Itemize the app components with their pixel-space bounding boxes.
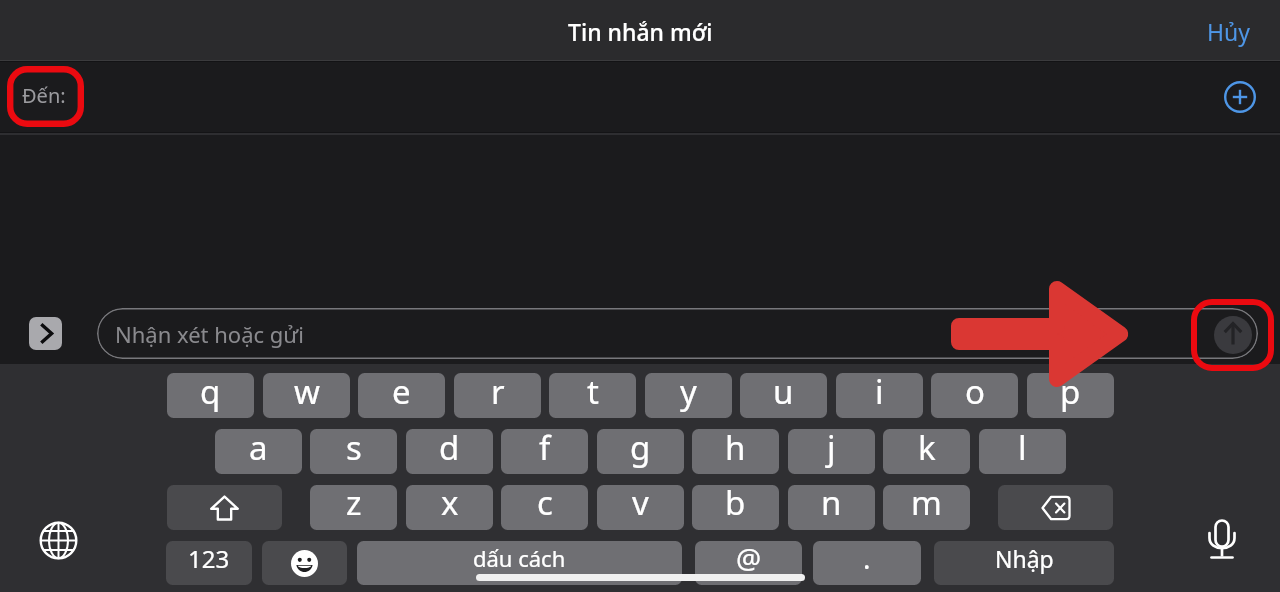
button[interactable]: Dictate [1200, 518, 1244, 564]
button[interactable]: z [310, 485, 397, 530]
button[interactable]: 123 [166, 541, 252, 585]
staticText: Nhận xét hoặc gửi [115, 319, 304, 349]
button[interactable]: f [501, 429, 588, 474]
button[interactable]: r [454, 373, 541, 418]
button[interactable]: o [931, 373, 1018, 418]
button[interactable]: Nhập [934, 541, 1114, 585]
staticText: y [680, 373, 697, 414]
button[interactable]: g [597, 429, 684, 474]
button[interactable]: h [692, 429, 779, 474]
button[interactable]: Nhận xét hoặc gửi [97, 308, 1258, 359]
button[interactable]: x [406, 485, 493, 530]
button[interactable]: . [813, 541, 921, 585]
button[interactable]: w [263, 373, 350, 418]
staticText: c [537, 485, 553, 525]
staticText: d [439, 429, 460, 470]
staticText: a [249, 429, 268, 470]
button[interactable]: v [597, 485, 684, 530]
button[interactable]: Show toolbar [29, 317, 62, 350]
staticText: . [863, 541, 871, 577]
staticText: k [918, 429, 936, 470]
button[interactable]: b [692, 485, 779, 530]
button[interactable]: Backspace [998, 485, 1113, 530]
button[interactable]: k [883, 429, 970, 474]
button[interactable]: s [310, 429, 397, 474]
staticText: i [875, 373, 884, 414]
staticText: p [1060, 373, 1081, 414]
staticText: w [294, 373, 320, 414]
button[interactable]: u [740, 373, 827, 418]
button[interactable]: i [836, 373, 923, 418]
button[interactable]: Hủy [1185, 6, 1280, 57]
staticText: Tin nhắn mới [568, 16, 713, 47]
staticText: r [491, 373, 505, 414]
button[interactable]: n [788, 485, 875, 530]
staticText: z [346, 485, 362, 525]
staticText: x [441, 485, 459, 525]
button[interactable]: l [979, 429, 1066, 474]
staticText: q [200, 373, 221, 414]
staticText: h [725, 429, 746, 470]
staticText: e [392, 373, 411, 414]
staticText: Nhập [995, 543, 1054, 574]
button[interactable]: Shift [167, 485, 282, 530]
button[interactable]: Send [1214, 316, 1252, 354]
button[interactable]: @ [695, 541, 802, 585]
staticText: dấu cách [473, 543, 566, 573]
staticText: u [773, 373, 794, 414]
button[interactable]: y [645, 373, 732, 418]
button[interactable]: q [167, 373, 254, 418]
button[interactable]: m [883, 485, 970, 530]
staticText: l [1018, 429, 1027, 470]
button[interactable]: d [406, 429, 493, 474]
staticText: j [827, 429, 836, 470]
staticText: f [539, 429, 551, 470]
staticText: Đến: [22, 82, 66, 109]
button[interactable]: p [1027, 373, 1114, 418]
staticText: 123 [188, 542, 230, 575]
staticText: o [965, 373, 985, 414]
staticText: Hủy [1207, 16, 1250, 47]
button[interactable]: Change keyboard [37, 519, 80, 562]
staticText: s [346, 429, 362, 470]
staticText: v [632, 485, 649, 525]
staticText: m [911, 485, 942, 525]
button[interactable]: j [788, 429, 875, 474]
staticText: g [630, 429, 651, 470]
staticText: b [725, 485, 746, 525]
staticText: n [821, 485, 842, 525]
button[interactable]: a [215, 429, 302, 474]
staticText: @ [736, 541, 762, 577]
button[interactable]: dấu cách [357, 541, 682, 585]
button[interactable]: Emoji [262, 541, 347, 585]
button[interactable]: e [358, 373, 445, 418]
staticText: t [587, 373, 599, 414]
button[interactable]: c [501, 485, 588, 530]
button[interactable]: t [549, 373, 636, 418]
button[interactable]: Add recipient [1221, 78, 1259, 116]
